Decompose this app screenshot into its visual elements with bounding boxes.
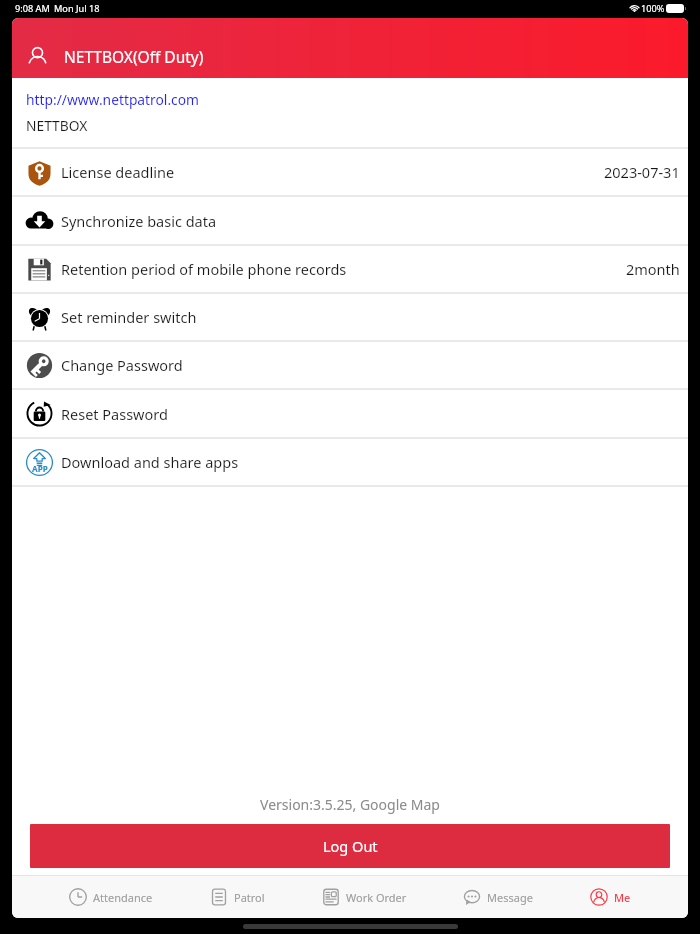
staticText: License deadline xyxy=(61,162,175,182)
staticText: Set reminder switch xyxy=(61,307,197,327)
button[interactable]: Attendance xyxy=(69,876,153,918)
button[interactable]: Account profile xyxy=(12,18,688,78)
button[interactable]: Me xyxy=(590,876,631,918)
button[interactable]: http://www.nettpatrol.com xyxy=(12,78,688,147)
staticText: 9:08 AM xyxy=(15,2,50,15)
button[interactable]: Message xyxy=(463,876,533,918)
staticText: APP xyxy=(32,463,48,474)
button[interactable]: Set reminder switch xyxy=(12,294,688,340)
staticText: Retention period of mobile phone records xyxy=(61,259,347,279)
button[interactable]: Log Out xyxy=(30,824,670,868)
staticText: Change Password xyxy=(61,355,183,375)
staticText: Log Out xyxy=(323,836,378,856)
staticText: Work Order xyxy=(346,890,407,905)
button[interactable]: Patrol xyxy=(210,876,265,918)
staticText: Mon Jul 18 xyxy=(54,2,100,15)
staticText: Reset Password xyxy=(61,404,168,424)
button[interactable]: Work Order xyxy=(322,876,407,918)
staticText: Message xyxy=(487,890,533,905)
staticText: Patrol xyxy=(234,890,265,905)
staticText: Download and share apps xyxy=(61,452,239,472)
button[interactable]: Reset Password xyxy=(12,390,688,437)
staticText: http://www.nettpatrol.com xyxy=(26,90,199,109)
button[interactable]: Synchronize basic data xyxy=(12,197,688,244)
staticText: NETTBOX xyxy=(26,116,88,135)
button[interactable]: APP xyxy=(12,439,688,485)
staticText: Synchronize basic data xyxy=(61,211,217,231)
staticText: Version:3.5.25, Google Map xyxy=(12,795,688,814)
button[interactable]: License deadline xyxy=(12,149,688,195)
staticText: 2month xyxy=(626,259,680,279)
staticText: Attendance xyxy=(93,890,153,905)
button[interactable]: Retention period of mobile phone records xyxy=(12,246,688,292)
button[interactable]: Change Password xyxy=(12,342,688,388)
staticText: 2023-07-31 xyxy=(604,162,680,182)
staticText: 100% xyxy=(641,2,665,15)
button[interactable]: Account profile xyxy=(28,47,47,66)
staticText: NETTBOX(Off Duty) xyxy=(64,46,204,67)
staticText: Me xyxy=(614,890,631,905)
